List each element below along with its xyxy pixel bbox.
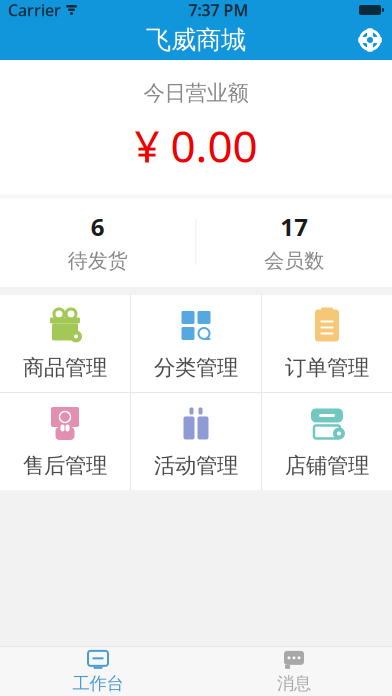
staticText: ¥ 0.00 xyxy=(134,116,257,175)
staticText: 店铺管理 xyxy=(285,452,369,479)
staticText: 订单管理 xyxy=(285,354,369,381)
button[interactable]: Settings xyxy=(348,20,392,60)
staticText: 会员数 xyxy=(264,248,324,273)
staticText: Carrier xyxy=(8,0,61,21)
staticText: 6 xyxy=(91,211,105,242)
staticText: 今日营业额 xyxy=(143,80,248,106)
button[interactable]: 售后管理 xyxy=(0,393,130,490)
button[interactable]: 工作台 xyxy=(0,647,196,696)
button[interactable]: 商品管理 xyxy=(0,295,130,392)
button[interactable]: 6 xyxy=(0,197,195,287)
staticText: 17 xyxy=(280,211,308,242)
button[interactable]: 活动管理 xyxy=(131,393,261,490)
button[interactable]: 17 xyxy=(196,197,392,287)
staticText: 售后管理 xyxy=(23,452,107,479)
staticText: 分类管理 xyxy=(154,354,238,381)
staticText: 飞威商城 xyxy=(146,24,246,55)
staticText: 商品管理 xyxy=(23,354,107,381)
staticText: 消息 xyxy=(277,673,311,694)
button[interactable]: 店铺管理 xyxy=(262,393,392,490)
button[interactable]: 分类管理 xyxy=(131,295,261,392)
button[interactable]: 消息 xyxy=(196,647,392,696)
staticText: 7:37 PM xyxy=(188,0,248,21)
staticText: 工作台 xyxy=(72,673,123,694)
button[interactable]: 订单管理 xyxy=(262,295,392,392)
staticText: 活动管理 xyxy=(154,452,238,479)
staticText: 待发货 xyxy=(68,248,128,273)
